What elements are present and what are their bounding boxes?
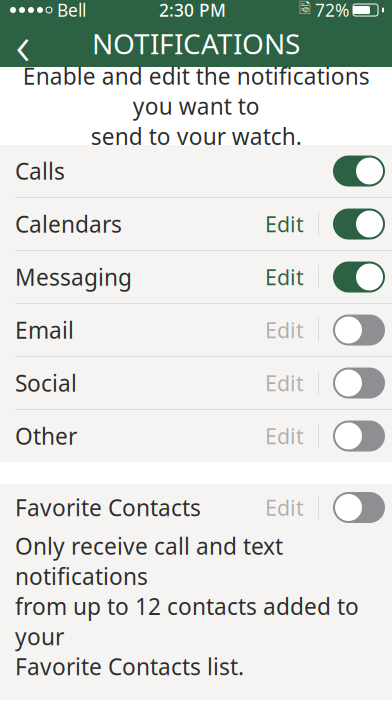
- staticText: Other: [15, 421, 77, 451]
- staticText: Only receive call and text notifications…: [15, 531, 359, 681]
- button[interactable]: Other: [0, 410, 392, 462]
- staticText: Favorite Contacts: [15, 492, 201, 522]
- staticText: NOTIFICATIONS: [92, 25, 300, 62]
- staticText: Edit: [265, 369, 304, 397]
- staticText: ‹: [15, 6, 30, 81]
- staticText: 2:30 PM: [159, 0, 226, 21]
- staticText: Calls: [15, 156, 65, 186]
- button[interactable]: Favorite Contacts: [0, 484, 392, 531]
- staticText: Edit: [265, 422, 304, 450]
- button[interactable]: Social: [0, 357, 392, 409]
- staticText: Email: [15, 315, 74, 345]
- staticText: Bell: [57, 0, 86, 21]
- staticText: Social: [15, 368, 77, 398]
- staticText: Enable and edit the notifications you wa…: [22, 61, 369, 151]
- staticText: 🗟: [299, 0, 311, 22]
- button[interactable]: Email: [0, 304, 392, 356]
- button[interactable]: Calls: [0, 145, 392, 197]
- button[interactable]: Messaging: [0, 251, 392, 303]
- staticText: 72%: [315, 0, 349, 21]
- button[interactable]: Back: [0, 20, 46, 67]
- staticText: Messaging: [15, 262, 132, 292]
- staticText: Edit: [265, 493, 304, 522]
- button[interactable]: Calendars: [0, 198, 392, 250]
- staticText: Edit: [265, 316, 304, 344]
- staticText: Edit: [265, 210, 304, 238]
- staticText: Calendars: [15, 209, 122, 239]
- staticText: Edit: [265, 263, 304, 291]
